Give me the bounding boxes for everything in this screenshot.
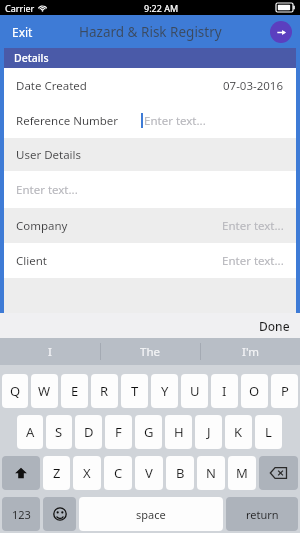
staticText: Hazard & Risk Registry	[79, 23, 222, 41]
staticText: Enter text...	[144, 113, 206, 129]
button[interactable]: C	[104, 456, 132, 490]
button[interactable]: Done	[249, 314, 300, 338]
staticText: space	[136, 507, 166, 522]
button[interactable]: Y	[151, 374, 178, 408]
staticText: Exit	[12, 24, 33, 40]
button[interactable]: Z	[43, 456, 70, 490]
staticText: Enter text...	[222, 253, 284, 269]
staticText: L	[265, 423, 272, 441]
button[interactable]: Shift	[2, 456, 40, 490]
button[interactable]: Next	[270, 21, 292, 43]
staticText: W	[38, 382, 51, 400]
staticText: I'm	[242, 344, 259, 360]
staticText: Q	[10, 382, 21, 400]
button[interactable]: D	[75, 415, 102, 449]
button[interactable]: X	[73, 456, 101, 490]
button[interactable]: I'm	[200, 338, 300, 365]
button[interactable]: G	[135, 415, 162, 449]
staticText: Company	[16, 218, 68, 234]
button[interactable]: L	[255, 415, 282, 449]
staticText: O	[249, 382, 260, 400]
button[interactable]: H	[165, 415, 192, 449]
staticText: return	[246, 507, 279, 522]
staticText: X	[83, 464, 91, 482]
button[interactable]: V	[135, 456, 163, 490]
staticText: E	[71, 382, 79, 400]
button[interactable]: Client	[4, 243, 296, 278]
staticText: K	[234, 423, 243, 441]
staticText: T	[131, 382, 139, 400]
staticText: B	[176, 464, 185, 482]
staticText: P	[281, 382, 289, 400]
button[interactable]: Emoji	[43, 497, 76, 531]
button[interactable]: I	[211, 374, 238, 408]
staticText: 9:22 AM	[144, 2, 179, 14]
staticText: Details	[14, 51, 49, 65]
button[interactable]: N	[197, 456, 225, 490]
staticText: U	[190, 382, 200, 400]
button[interactable]: Q	[2, 374, 28, 408]
button[interactable]: E	[61, 374, 88, 408]
staticText: J	[207, 423, 211, 441]
button[interactable]: J	[195, 415, 222, 449]
button[interactable]: R	[91, 374, 118, 408]
staticText: N	[206, 464, 216, 482]
staticText: Carrier	[5, 2, 35, 14]
button[interactable]: W	[31, 374, 58, 408]
button[interactable]: F	[105, 415, 132, 449]
staticText: Reference Number	[16, 113, 119, 129]
staticText: Done	[259, 318, 290, 334]
button[interactable]: A	[17, 415, 43, 449]
staticText: User Details	[16, 147, 82, 163]
button[interactable]: Company	[4, 208, 296, 243]
staticText: S	[55, 423, 63, 441]
button[interactable]: P	[271, 374, 298, 408]
staticText: Date Created	[16, 78, 87, 94]
staticText: A	[26, 423, 35, 441]
button[interactable]: O	[241, 374, 268, 408]
button[interactable]: Reference Number	[4, 103, 296, 138]
button[interactable]: Enter text...	[4, 171, 296, 208]
button[interactable]: space	[79, 497, 223, 531]
staticText: F	[115, 423, 122, 441]
button[interactable]: Date Created	[4, 68, 296, 103]
button[interactable]: User Details	[4, 138, 296, 171]
button[interactable]: I	[0, 338, 100, 365]
button[interactable]: B	[166, 456, 194, 490]
staticText: Y	[161, 382, 169, 400]
button[interactable]: Exit	[6, 19, 39, 45]
staticText: G	[144, 423, 154, 441]
button[interactable]: S	[46, 415, 72, 449]
staticText: C	[114, 464, 123, 482]
staticText: 07-03-2016	[223, 78, 284, 94]
staticText: Enter text...	[222, 218, 284, 234]
button[interactable]: 123	[2, 497, 40, 531]
button[interactable]: return	[226, 497, 298, 531]
staticText: H	[174, 423, 184, 441]
staticText: M	[236, 464, 248, 482]
staticText: Z	[53, 464, 61, 482]
button[interactable]: Backspace	[259, 456, 298, 490]
button[interactable]: M	[228, 456, 256, 490]
staticText: I	[222, 382, 227, 400]
button[interactable]: The	[100, 338, 200, 365]
staticText: 123	[12, 507, 31, 522]
staticText: I	[48, 344, 52, 360]
staticText: The	[140, 344, 160, 360]
button[interactable]: K	[225, 415, 252, 449]
staticText: R	[100, 382, 109, 400]
staticText: Client	[16, 253, 47, 269]
staticText: Enter text...	[16, 182, 78, 198]
button[interactable]: U	[181, 374, 208, 408]
staticText: V	[145, 464, 153, 482]
button[interactable]: T	[121, 374, 148, 408]
staticText: D	[84, 423, 94, 441]
